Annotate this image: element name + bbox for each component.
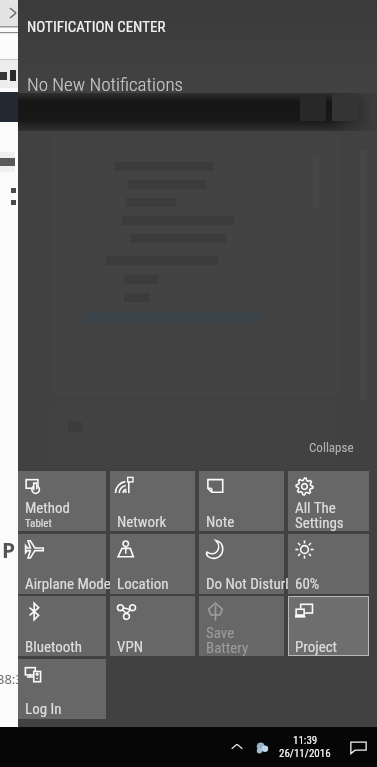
staticText: Bluetooth [25, 638, 82, 656]
staticText: NOTIFICATION CENTER [27, 18, 166, 36]
button[interactable] [18, 471, 106, 531]
staticText: All The Settings [295, 499, 344, 532]
staticText: 26/11/2016 [279, 747, 331, 760]
staticText: Tablet [25, 517, 52, 530]
staticText: Airplane Mode [25, 575, 111, 593]
staticText: P [2, 536, 16, 565]
staticText: 60% [295, 575, 320, 593]
staticText: Location [117, 575, 169, 593]
button[interactable] [110, 534, 195, 594]
button[interactable] [199, 596, 284, 656]
staticText: 38:3 [0, 670, 23, 688]
button[interactable]: Network status [249, 734, 275, 760]
staticText: Network [117, 513, 167, 531]
staticText: Note [206, 513, 235, 531]
button[interactable] [18, 596, 106, 656]
button[interactable] [288, 471, 369, 531]
button[interactable] [288, 596, 369, 656]
staticText: Save Battery [206, 624, 249, 657]
staticText: Method [25, 499, 71, 517]
button[interactable] [288, 534, 369, 594]
button[interactable] [110, 471, 195, 531]
button[interactable]: Action center [343, 732, 373, 762]
button[interactable]: 11:39 [279, 734, 331, 760]
staticText: No New Notifications [27, 73, 184, 95]
button[interactable] [110, 596, 195, 656]
staticText: Log In [25, 700, 62, 718]
button[interactable] [18, 659, 106, 719]
button[interactable]: Collapse [309, 440, 354, 455]
button[interactable] [199, 534, 284, 594]
button[interactable] [18, 534, 106, 594]
staticText: Project [295, 638, 338, 656]
button[interactable] [199, 471, 284, 531]
staticText: VPN [117, 638, 144, 656]
staticText: Do Not Disturb [206, 575, 293, 593]
button[interactable]: Show hidden icons [225, 735, 249, 759]
staticText: 11:39 [293, 734, 318, 747]
